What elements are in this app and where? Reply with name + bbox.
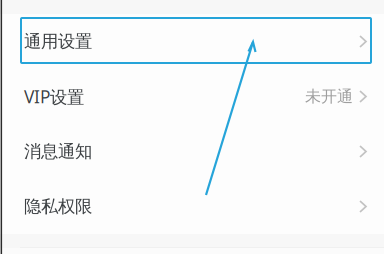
staticText: 消息通知 [24, 141, 92, 162]
button[interactable]: 通用设置 [0, 14, 384, 69]
button[interactable]: VIP设置 [0, 69, 384, 124]
staticText: 通用设置 [24, 31, 92, 52]
staticText: 隐私权限 [24, 196, 92, 217]
button[interactable]: 隐私权限 [0, 179, 384, 234]
button[interactable]: 消息通知 [0, 124, 384, 179]
staticText: VIP设置 [24, 85, 84, 108]
staticText: 未开通 [305, 87, 353, 106]
